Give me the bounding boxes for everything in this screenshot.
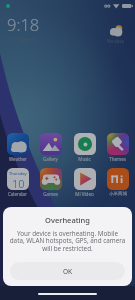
button[interactable]: Weather [1,133,34,162]
button[interactable]: OK [10,262,125,280]
staticText: OK [63,267,73,276]
staticText: No data [107,38,124,44]
button[interactable]: Gallery [34,133,67,162]
button[interactable]: Games [34,168,67,197]
staticText: Mi Video [75,191,94,197]
staticText: Gallery [43,156,58,162]
staticText: Themes [109,156,126,162]
staticText: Thu, March 30 [7,37,38,43]
staticText: 小米商城 [109,191,127,197]
staticText: 9:18 [7,13,40,35]
staticText: Thursday [9,171,27,176]
button[interactable]: Thursday [1,168,34,197]
staticText: Your device is overheating. Mobile data,… [9,229,126,253]
staticText: Calendar [8,191,27,197]
button[interactable]: Music [68,133,101,162]
button[interactable]: Weather [107,25,124,44]
button[interactable]: Mi Video [68,168,101,197]
staticText: Games [43,191,58,197]
button[interactable]: 小米商城 [101,168,134,197]
staticText: Music [78,156,91,162]
staticText: Weather [9,156,27,162]
button[interactable]: Themes [101,133,134,162]
staticText: 10 [12,176,25,190]
staticText: Overheating [45,215,90,225]
